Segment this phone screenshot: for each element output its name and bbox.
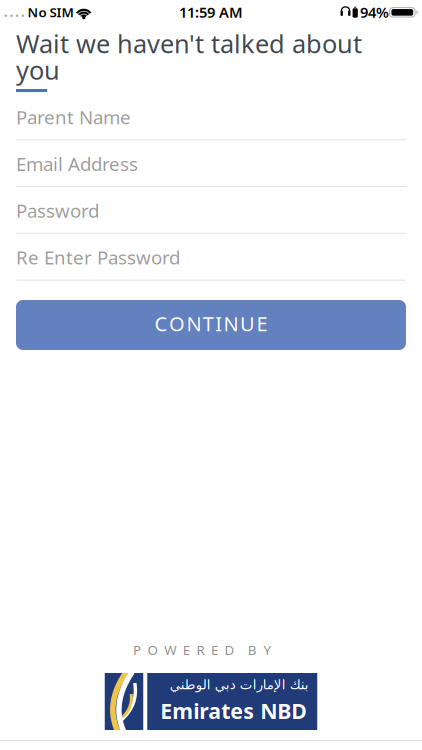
staticText: U <box>240 310 255 337</box>
staticText: B <box>248 641 257 659</box>
staticText: P <box>133 641 141 659</box>
staticText: E <box>256 310 267 337</box>
staticText: Password <box>16 198 99 223</box>
button[interactable]: Re Enter Password <box>16 245 406 281</box>
staticText: C <box>155 310 168 337</box>
staticText: Parent Name <box>16 104 131 129</box>
staticText: N <box>224 310 239 337</box>
staticText: Emirates NBD <box>160 696 307 725</box>
staticText: E <box>183 641 190 659</box>
button[interactable]: Email Address <box>16 151 406 187</box>
staticText: Re Enter Password <box>16 245 180 270</box>
staticText: Y <box>263 641 271 659</box>
staticText: O <box>169 310 185 337</box>
staticText: No SIM <box>27 3 73 21</box>
staticText: بنك الإمارات دبي الوطني <box>169 677 308 692</box>
button[interactable]: Parent Name <box>16 104 406 140</box>
staticText: W <box>164 641 176 659</box>
staticText: Wait we haven't talked about <box>16 26 362 60</box>
staticText: O <box>148 641 158 659</box>
staticText: you <box>16 53 60 87</box>
staticText: Email Address <box>16 151 138 176</box>
staticText: 11:59 AM <box>179 2 243 22</box>
staticText: D <box>225 641 235 659</box>
staticText: R <box>196 641 204 659</box>
button[interactable]: C <box>16 300 406 350</box>
staticText: T <box>203 310 214 337</box>
staticText: E <box>211 641 218 659</box>
button[interactable]: Password <box>16 198 406 234</box>
staticText: I <box>215 310 222 337</box>
staticText: 94% <box>360 2 389 22</box>
staticText: N <box>186 310 201 337</box>
